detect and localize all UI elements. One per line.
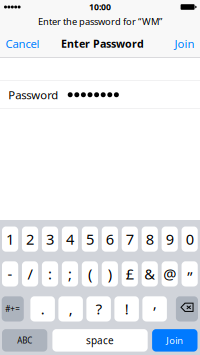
staticText: ” (187, 266, 192, 286)
button[interactable]: @ (162, 261, 178, 286)
button[interactable]: 7 (122, 226, 138, 252)
button[interactable]: 5 (82, 226, 98, 252)
staticText: , (69, 299, 73, 319)
button[interactable]: . (30, 296, 55, 321)
button[interactable]: 0 (181, 226, 198, 252)
staticText: #+= (5, 303, 20, 314)
button[interactable]: 3 (42, 226, 58, 252)
button[interactable]: ! (114, 296, 139, 321)
button[interactable]: space (52, 329, 148, 352)
staticText: 4 (66, 229, 74, 249)
button[interactable]: Join (168, 29, 200, 58)
staticText: Enter the password for “WM” (38, 15, 162, 28)
button[interactable]: : (42, 261, 58, 286)
button[interactable]: & (142, 261, 158, 286)
staticText: ’ (153, 301, 156, 321)
button[interactable]: #+= (2, 296, 24, 321)
staticText: 1 (6, 229, 14, 249)
staticText: ABC (17, 335, 32, 346)
staticText: space (86, 333, 114, 347)
staticText: ) (108, 264, 112, 284)
button[interactable]: £ (122, 261, 138, 286)
staticText: Enter Password (61, 36, 144, 51)
staticText: / (27, 264, 32, 284)
staticText: ; (68, 264, 72, 284)
button[interactable]: , (58, 296, 83, 321)
staticText: @ (163, 264, 176, 284)
staticText: - (8, 264, 13, 284)
button[interactable]: 9 (162, 226, 178, 252)
staticText: ? (96, 299, 102, 319)
button[interactable]: ( (82, 261, 98, 286)
button[interactable]: 1 (2, 226, 18, 252)
staticText: 5 (86, 229, 94, 249)
button[interactable]: ; (62, 261, 78, 286)
staticText: 7 (126, 229, 134, 249)
button[interactable]: Join (152, 329, 197, 352)
staticText: Cancel (5, 36, 39, 51)
staticText: £ (126, 264, 134, 284)
button[interactable]: / (22, 261, 38, 286)
staticText: Join (166, 334, 183, 347)
button[interactable]: ) (102, 261, 118, 286)
button[interactable]: Cancel (0, 29, 45, 58)
button[interactable]: 6 (102, 226, 118, 252)
button[interactable]: 2 (22, 226, 38, 252)
staticText: ! (125, 299, 129, 319)
staticText: 9 (166, 229, 174, 249)
staticText: 10:00 (89, 1, 111, 13)
button[interactable]: Password (0, 81, 200, 108)
button[interactable]: 4 (62, 226, 78, 252)
staticText: ( (88, 264, 92, 284)
button[interactable]: ” (181, 261, 198, 286)
button[interactable]: - (2, 261, 18, 286)
button[interactable]: 8 (142, 226, 158, 252)
staticText: 2 (26, 229, 34, 249)
staticText: 6 (106, 229, 114, 249)
staticText: 8 (146, 229, 154, 249)
button[interactable]: ? (86, 296, 111, 321)
button[interactable]: ’ (142, 296, 167, 321)
staticText: 0 (186, 229, 194, 249)
staticText: . (41, 299, 45, 319)
staticText: : (48, 264, 52, 284)
staticText: & (144, 264, 155, 284)
staticText: 3 (46, 229, 54, 249)
staticText: Join (174, 36, 194, 51)
staticText: Password (8, 87, 58, 102)
button[interactable]: ABC (2, 329, 47, 352)
button[interactable]: Delete (176, 296, 198, 321)
